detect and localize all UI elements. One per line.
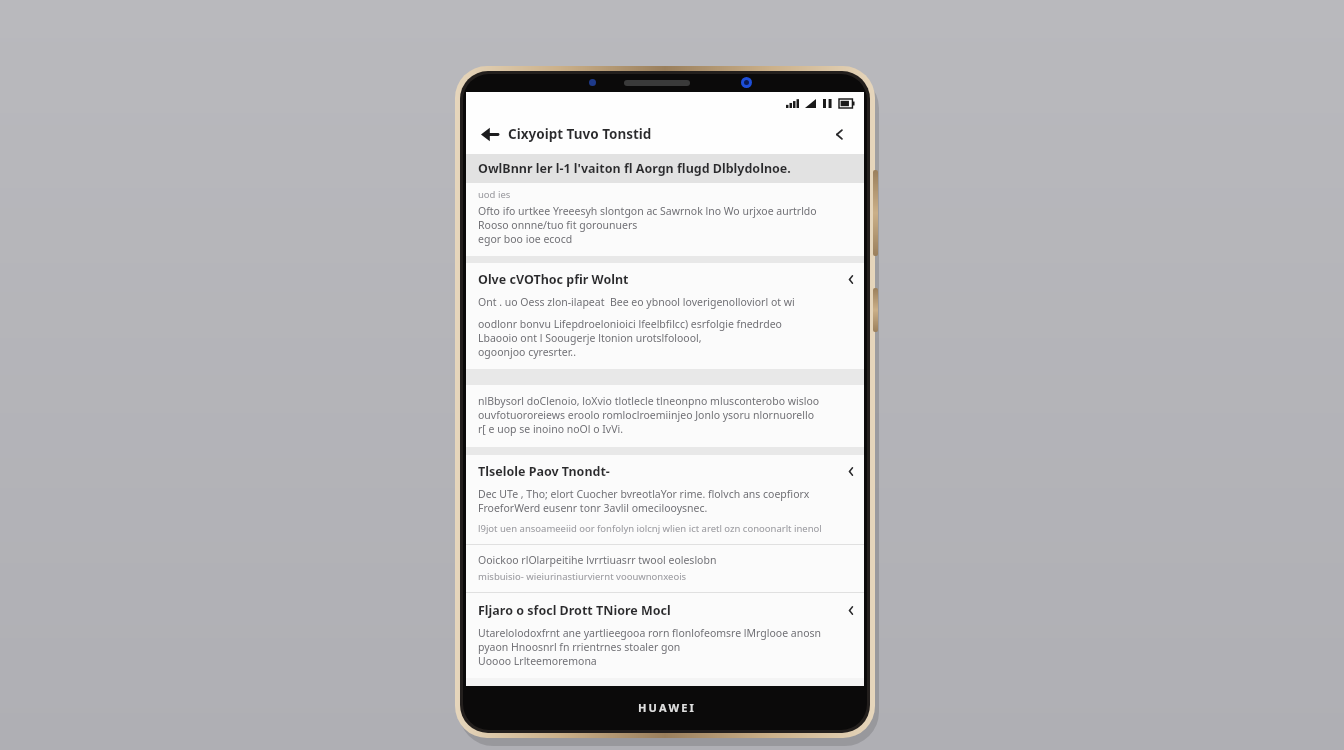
button[interactable]: OwlBnnr ler l-1 l'vaiton fl Aorgn flugd … xyxy=(466,154,864,183)
staticText: nlBbysorl doClenoio, loXvio tlotlecle tl… xyxy=(478,394,820,436)
staticText: Ont . uo Oess zlon-ilapeat Bee eo ybnool… xyxy=(478,295,795,309)
button[interactable]: Fljaro o sfocl Drott TNiore Mocl xyxy=(466,593,864,678)
staticText: l9jot uen ansoameeiid oor fonfolyn iolcn… xyxy=(478,522,822,535)
button[interactable]: uod ies xyxy=(466,183,864,256)
staticText: misbuisio- wieiurinastiurviernt voouwnon… xyxy=(478,570,687,583)
staticText: Fljaro o sfocl Drott TNiore Mocl xyxy=(478,602,848,619)
staticText: Olve cVOThoc pfir Wolnt xyxy=(478,271,848,288)
button[interactable]: nlBbysorl doClenoio, loXvio tlotlecle tl… xyxy=(466,385,864,447)
staticText: Ooickoo rlOlarpeitihe lvrrtiuasrr twool … xyxy=(478,553,717,567)
button[interactable]: Olve cVOThoc pfir Wolnt xyxy=(466,263,864,369)
staticText: uod ies xyxy=(478,188,511,201)
staticText: oodlonr bonvu Lifepdroelonioici lfeelbfi… xyxy=(478,317,782,359)
staticText: Ofto ifo urtkee Yreeesyh slontgon ac Saw… xyxy=(478,204,817,246)
button[interactable]: Ooickoo rlOlarpeitihe lvrrtiuasrr twool … xyxy=(466,545,864,592)
staticText: Utarelolodoxfrnt ane yartlieegooa rorn f… xyxy=(478,626,822,668)
button[interactable]: Tlselole Paov Tnondt- xyxy=(466,455,864,544)
button[interactable]: Back xyxy=(476,121,502,147)
staticText: Cixyoipt Tuvo Tonstid xyxy=(508,125,826,143)
staticText: OwlBnnr ler l-1 l'vaiton fl Aorgn flugd … xyxy=(478,160,791,177)
staticText: HUAWEI xyxy=(638,700,697,715)
button[interactable]: More xyxy=(826,121,852,147)
staticText: Dec UTe , Tho; elort Cuocher bvreotlaYor… xyxy=(478,487,810,515)
staticText: Tlselole Paov Tnondt- xyxy=(478,463,848,480)
